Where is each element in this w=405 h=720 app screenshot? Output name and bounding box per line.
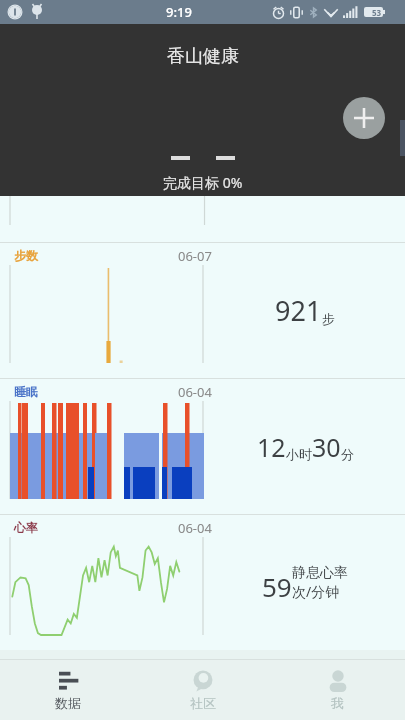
staticText: 921 [275, 292, 322, 329]
button[interactable]: 睡眠 [0, 379, 405, 514]
staticText: 06-04 [178, 519, 212, 537]
staticText: 完成目标 0% [163, 173, 243, 192]
staticText: 06-04 [178, 383, 212, 401]
staticText: 30 [312, 430, 341, 464]
button[interactable]: 我 [270, 660, 405, 720]
button[interactable]: Add [343, 97, 385, 139]
staticText: 12 [257, 430, 286, 464]
staticText: 06-07 [178, 247, 212, 265]
staticText: 53 [372, 7, 382, 18]
button[interactable]: 步数 [0, 243, 405, 378]
button[interactable]: 数据 [0, 660, 135, 720]
staticText: 数据 [55, 695, 81, 711]
staticText: 步数 [14, 248, 38, 263]
staticText: 睡眠 [14, 384, 38, 399]
staticText: 社区 [190, 695, 216, 711]
staticText: 心率 [14, 520, 38, 535]
staticText: 分 [341, 446, 354, 462]
button[interactable]: 心率 [0, 515, 405, 650]
staticText: 静息心率 [292, 564, 348, 582]
staticText: 9:19 [166, 3, 192, 21]
staticText: 小时 [286, 446, 312, 462]
button[interactable]: 社区 [135, 660, 270, 720]
staticText: 香山健康 [167, 45, 239, 68]
staticText: 我 [331, 695, 344, 711]
staticText: 59 [262, 569, 292, 604]
staticText: 步 [322, 311, 335, 327]
staticText: 次/分钟 [292, 582, 340, 601]
